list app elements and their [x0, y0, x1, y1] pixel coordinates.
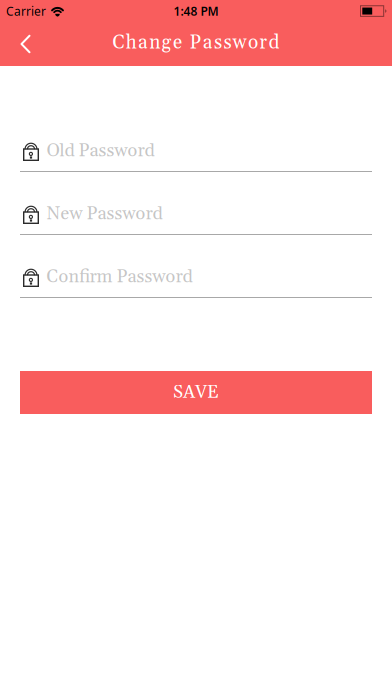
button[interactable]: SAVE	[20, 371, 372, 414]
button[interactable]: Back	[0, 22, 45, 66]
staticText: New Password	[46, 203, 162, 225]
staticText: Confirm Password	[46, 266, 192, 288]
button[interactable]: Confirm Password	[20, 267, 372, 298]
staticText: Old Password	[46, 140, 154, 162]
staticText: Carrier	[6, 3, 46, 19]
staticText: 1:48 PM	[173, 3, 218, 19]
button[interactable]: Old Password	[20, 141, 372, 172]
button[interactable]: New Password	[20, 204, 372, 235]
staticText: SAVE	[173, 381, 219, 404]
staticText: Change Password	[112, 31, 280, 55]
